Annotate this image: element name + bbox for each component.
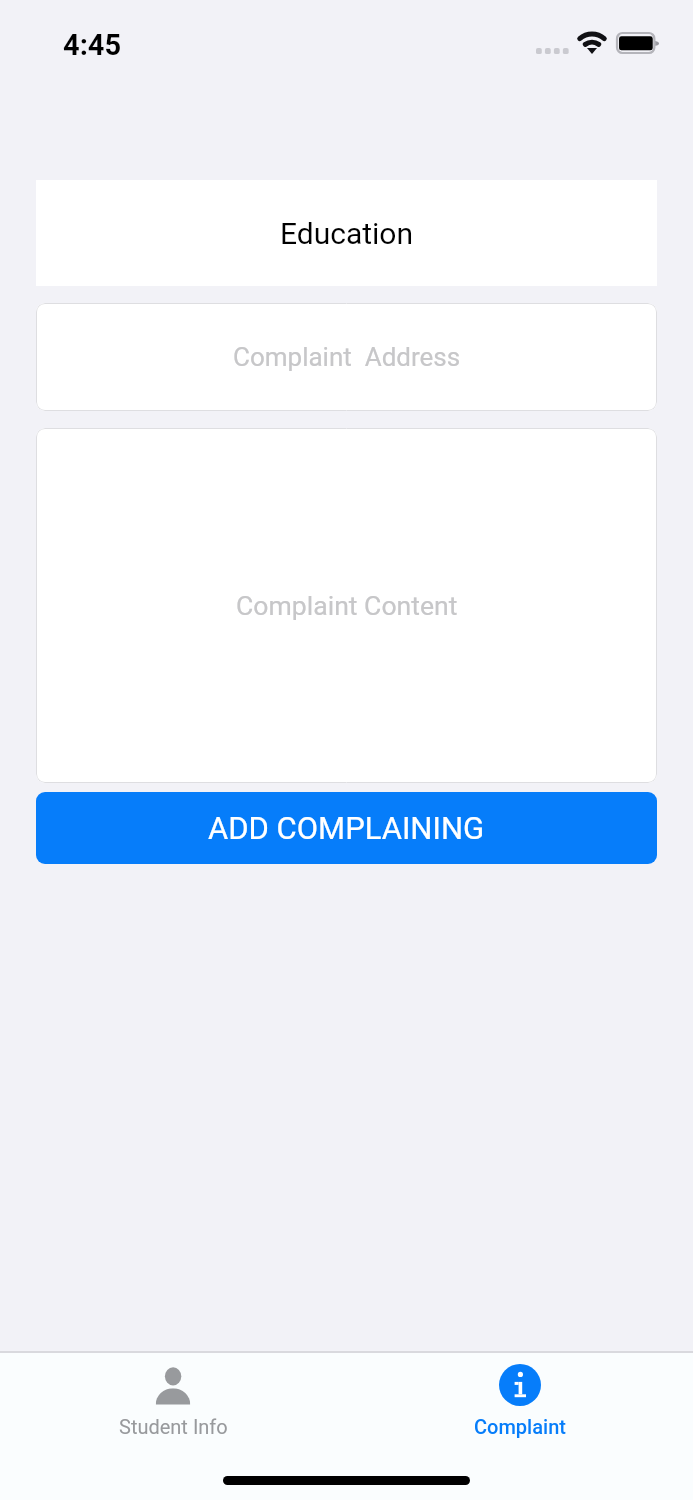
staticText: Education xyxy=(280,216,414,251)
button[interactable]: Complaint Address xyxy=(36,303,657,411)
staticText: Complaint Address xyxy=(233,342,461,372)
button[interactable]: ADD COMPLAINING xyxy=(36,792,657,864)
staticText: Complaint Content xyxy=(236,590,458,621)
button[interactable]: Student Info xyxy=(0,1353,346,1500)
staticText: 4:45 xyxy=(63,28,122,62)
other: Complaint xyxy=(499,1364,541,1406)
other: Student Info xyxy=(153,1364,195,1406)
button[interactable]: Complaint xyxy=(346,1353,693,1500)
staticText: Student Info xyxy=(119,1415,228,1438)
button[interactable]: Complaint Content xyxy=(36,428,657,783)
staticText: Complaint xyxy=(474,1415,566,1438)
staticText: ADD COMPLAINING xyxy=(208,810,485,846)
